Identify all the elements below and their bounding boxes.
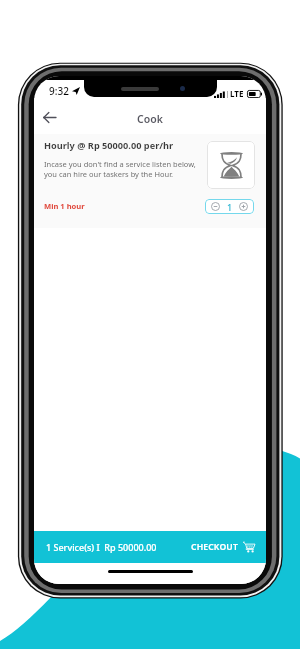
- staticText: Cook: [137, 112, 163, 126]
- staticText: 1: [227, 201, 233, 213]
- staticText: Hourly @ Rp 50000.00 per/hr: [44, 139, 174, 152]
- staticText: CHECKOUT: [191, 541, 238, 553]
- staticText: Incase you don't find a service listen b…: [44, 159, 196, 179]
- button[interactable]: Decrease quantity: [205, 199, 254, 214]
- staticText: Min 1 hour: [44, 201, 85, 211]
- button[interactable]: Increase quantity: [237, 200, 250, 213]
- button[interactable]: 1 Service(s) I Rp 50000.00: [34, 531, 266, 563]
- button[interactable]: Back: [36, 104, 62, 130]
- button[interactable]: Decrease quantity: [209, 200, 222, 213]
- staticText: LTE: [230, 88, 244, 99]
- button[interactable]: Hourly @ Rp 50000.00 per/hr: [34, 134, 266, 228]
- staticText: 9:32: [49, 84, 69, 98]
- staticText: 1 Service(s) I Rp 50000.00: [46, 541, 157, 553]
